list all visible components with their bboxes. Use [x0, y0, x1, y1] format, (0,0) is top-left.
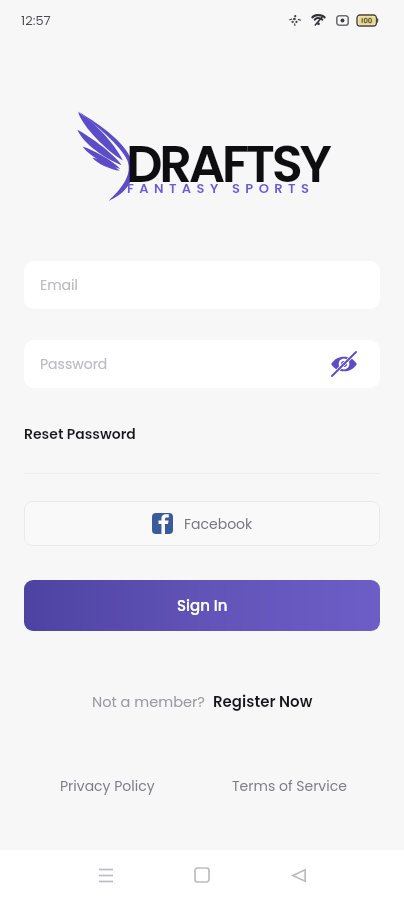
staticText: DRAFTSY: [126, 128, 329, 199]
staticText: Privacy Policy: [60, 776, 155, 796]
staticText: Facebook: [184, 514, 253, 534]
staticText: Sign In: [177, 595, 228, 616]
staticText: Not a member?: [92, 692, 205, 712]
staticText: FANTASY SPORTS: [127, 179, 315, 197]
button[interactable]: Reset Password: [24, 422, 136, 446]
button[interactable]: Sign In: [24, 580, 380, 631]
staticText: Reset Password: [24, 424, 136, 444]
button[interactable]: Home: [180, 853, 224, 897]
staticText: Register Now: [213, 691, 313, 712]
staticText: Terms of Service: [232, 776, 347, 796]
button[interactable]: Toggle password visibility: [330, 350, 358, 378]
staticText: Email: [40, 275, 78, 295]
button[interactable]: Password: [24, 340, 380, 388]
button[interactable]: Register Now: [213, 689, 313, 714]
button[interactable]: Privacy Policy: [60, 774, 155, 798]
button[interactable]: Email: [24, 261, 380, 309]
button[interactable]: Facebook: [24, 501, 380, 546]
button[interactable]: Recent apps: [84, 853, 128, 897]
staticText: 12:57: [21, 11, 51, 29]
staticText: Password: [40, 354, 108, 374]
button[interactable]: Back: [277, 853, 321, 897]
button[interactable]: Terms of Service: [232, 774, 347, 798]
